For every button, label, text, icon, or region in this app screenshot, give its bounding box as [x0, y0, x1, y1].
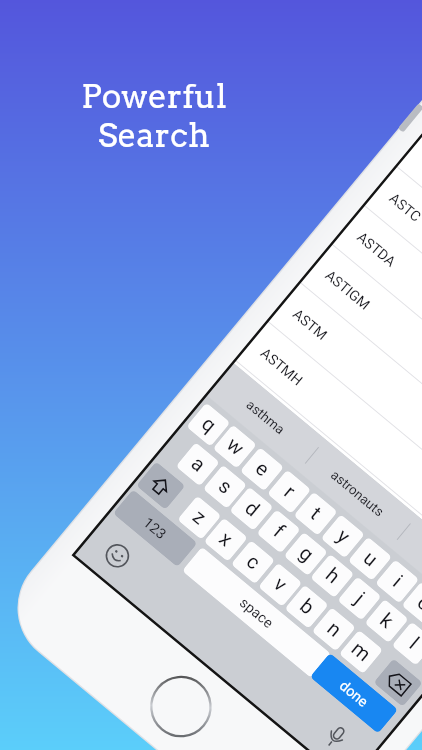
staticText: ASTMH	[257, 344, 306, 389]
button[interactable]: ASTC	[364, 166, 422, 434]
button[interactable]: y	[321, 514, 365, 558]
button[interactable]: space	[182, 547, 331, 678]
button[interactable]: e	[240, 447, 284, 491]
staticText: d	[240, 496, 264, 522]
staticText: b	[295, 594, 319, 620]
button[interactable]: done	[310, 653, 398, 734]
staticText: s	[213, 474, 237, 499]
staticText: z	[188, 505, 211, 530]
staticText: e	[250, 457, 274, 482]
staticText: 123	[140, 514, 170, 543]
button[interactable]: x	[204, 517, 248, 562]
staticText: c	[241, 550, 265, 575]
button[interactable]: astronauts	[298, 439, 417, 547]
button[interactable]: Dictate	[314, 715, 357, 750]
staticText: u	[358, 546, 382, 572]
button[interactable]: i	[375, 559, 419, 604]
staticText: a	[186, 452, 210, 477]
button[interactable]: c	[231, 540, 275, 584]
button[interactable]: l	[392, 621, 422, 666]
button[interactable]: v	[258, 563, 302, 607]
button[interactable]: Shift	[136, 461, 185, 510]
staticText: asthma	[243, 397, 288, 438]
staticText: t	[305, 502, 326, 525]
staticText: ASTDA	[353, 228, 400, 271]
button[interactable]: Numbers	[113, 489, 198, 567]
button[interactable]: z	[177, 495, 222, 540]
button[interactable]: t	[293, 491, 338, 536]
staticText: ASTIGM	[322, 267, 374, 314]
staticText: ASTC	[386, 189, 422, 226]
button[interactable]: a	[176, 442, 220, 486]
staticText: Powerful Search	[53, 76, 255, 155]
button[interactable]: asthma	[206, 363, 325, 471]
button[interactable]: g	[284, 532, 328, 576]
button[interactable]: f	[256, 509, 301, 554]
staticText: k	[375, 608, 398, 634]
button[interactable]: k	[364, 599, 409, 643]
button[interactable]: s	[203, 465, 247, 509]
staticText: ASTN	[225, 383, 265, 420]
button[interactable]: h	[310, 554, 354, 598]
staticText: done	[336, 677, 372, 711]
staticText: astronauts	[328, 467, 387, 519]
button[interactable]: ASTM	[267, 283, 422, 550]
button[interactable]: n	[312, 607, 356, 651]
button[interactable]: ASTN	[203, 360, 422, 627]
button[interactable]: w	[213, 424, 257, 469]
button[interactable]: ASTIGM	[300, 244, 422, 511]
staticText: i	[388, 571, 407, 593]
staticText: g	[294, 541, 318, 567]
button[interactable]: d	[229, 487, 274, 531]
button[interactable]: m	[339, 630, 383, 674]
staticText: f	[268, 520, 289, 543]
staticText: x	[214, 527, 237, 552]
button[interactable]: Emoji	[96, 534, 139, 577]
staticText: r	[279, 480, 300, 504]
staticText: l	[404, 633, 422, 655]
button[interactable]: ASTDA	[331, 205, 422, 473]
staticText: o	[412, 591, 422, 616]
staticText: y	[332, 524, 354, 549]
staticText: h	[321, 563, 345, 589]
button[interactable]: r	[267, 469, 311, 514]
staticText: ASTM	[289, 306, 330, 344]
button[interactable]	[390, 515, 422, 624]
staticText: space	[236, 594, 277, 632]
button[interactable]: Backspace	[373, 658, 422, 707]
button[interactable]: q	[186, 402, 231, 447]
staticText: q	[197, 412, 221, 438]
button[interactable]: b	[284, 585, 329, 629]
staticText: j	[350, 588, 370, 610]
button[interactable]: u	[348, 537, 392, 581]
button[interactable]: o	[401, 581, 422, 626]
staticText: n	[322, 617, 346, 642]
staticText: w	[222, 433, 249, 461]
staticText: v	[268, 572, 292, 597]
button[interactable]: ASTMH	[235, 321, 422, 589]
staticText: m	[346, 637, 376, 667]
button[interactable]: j	[337, 576, 382, 621]
